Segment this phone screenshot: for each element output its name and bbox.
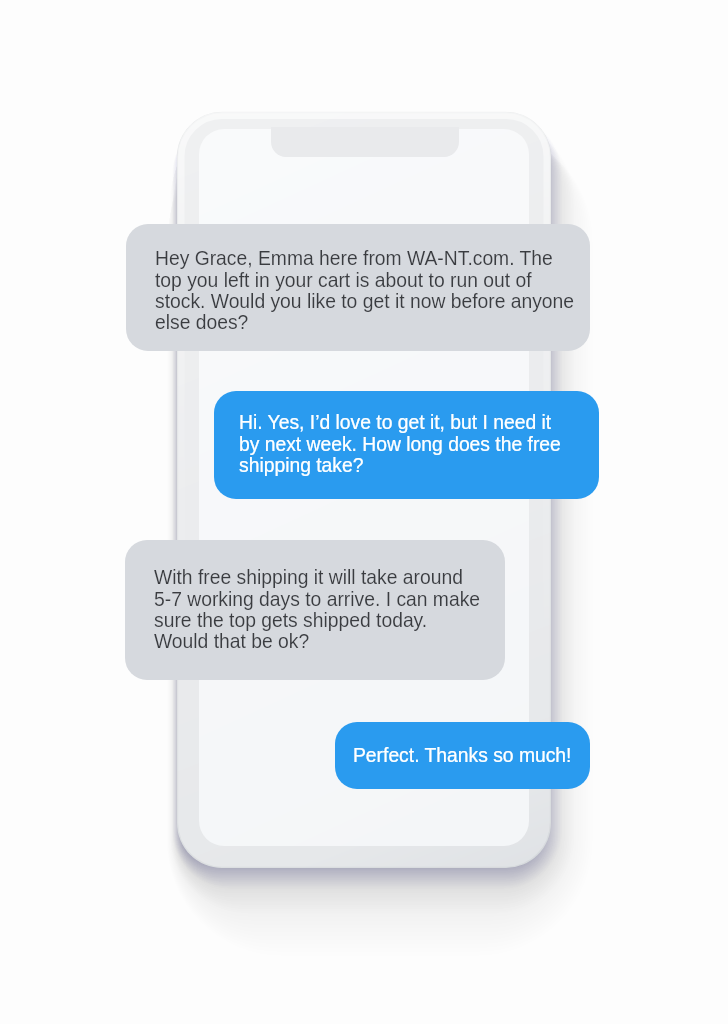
staticText: Hi. Yes, I’d love to get it, but I need … (239, 412, 561, 476)
button[interactable]: Perfect. Thanks so much! (335, 722, 590, 789)
button[interactable]: Hi. Yes, I’d love to get it, but I need … (214, 391, 599, 499)
button[interactable]: Hey Grace, Emma here from WA-NT.com. The… (126, 224, 590, 351)
button[interactable]: With free shipping it will take around 5… (125, 540, 505, 680)
staticText: With free shipping it will take around 5… (154, 567, 481, 652)
staticText: Hey Grace, Emma here from WA-NT.com. The… (155, 248, 575, 333)
staticText: Perfect. Thanks so much! (353, 745, 572, 767)
